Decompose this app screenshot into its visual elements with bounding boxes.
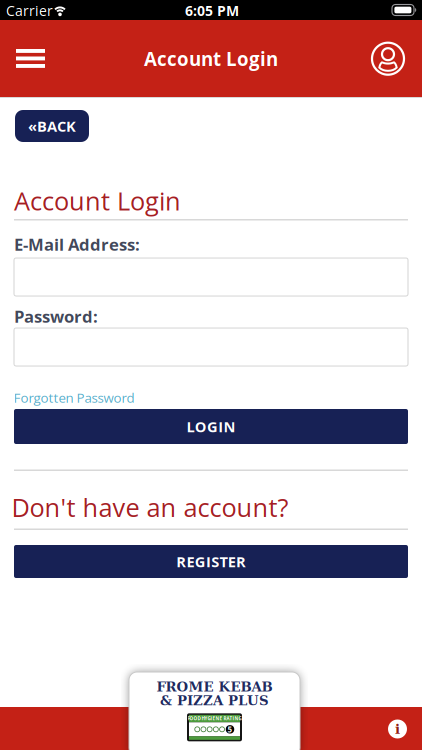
- staticText: Don't have an account?: [11, 490, 288, 524]
- staticText: & PIZZA PLUS: [160, 693, 269, 708]
- staticText: Forgotten Password: [13, 388, 134, 407]
- staticText: 5: [227, 724, 232, 735]
- staticText: E-Mail Address:: [14, 233, 140, 256]
- staticText: LOGIN: [186, 416, 235, 436]
- button[interactable]: [368, 39, 408, 79]
- staticText: REGISTER: [176, 551, 246, 571]
- staticText: FROME KEBAB: [156, 679, 272, 695]
- button[interactable]: «BACK: [15, 110, 89, 142]
- button[interactable]: REGISTER: [14, 545, 408, 578]
- staticText: i: [395, 721, 400, 737]
- button[interactable]: LOGIN: [14, 409, 408, 444]
- staticText: 6:05 PM: [185, 1, 239, 20]
- button[interactable]: i: [387, 718, 408, 739]
- staticText: Carrier: [6, 1, 53, 20]
- button[interactable]: Forgotten Password: [11, 386, 136, 409]
- staticText: Account Login: [14, 183, 181, 218]
- staticText: «BACK: [28, 116, 76, 136]
- staticText: FOOD HYGIENE RATING: [187, 715, 241, 722]
- staticText: Password:: [14, 305, 98, 328]
- button[interactable]: [10, 43, 51, 74]
- staticText: Account Login: [144, 46, 278, 71]
